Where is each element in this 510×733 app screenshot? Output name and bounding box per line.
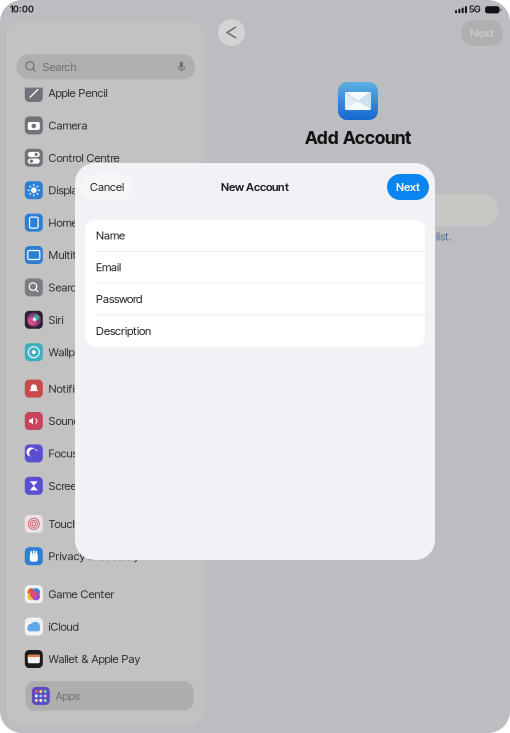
button[interactable]: Control Centre (18, 142, 200, 174)
staticText: Notifications (49, 382, 110, 395)
button[interactable]: Wallet & Apple Pay (18, 643, 200, 675)
button[interactable]: Cancel (80, 174, 134, 200)
staticText: Add Account (305, 127, 411, 148)
staticText: Apple Pencil (49, 86, 108, 100)
button[interactable]: Password (85, 283, 425, 315)
button[interactable]: Wallpaper (18, 336, 200, 368)
button[interactable]: Back (218, 19, 245, 46)
staticText: 10:00 (10, 4, 34, 15)
staticText: Game Center (49, 587, 115, 601)
button[interactable]: Next (387, 174, 429, 200)
staticText: Home Screen & App Library (49, 216, 184, 229)
staticText: Wallet & Apple Pay (49, 652, 141, 666)
staticText: Wallpaper (49, 345, 97, 359)
staticText: 5G (469, 4, 481, 15)
staticText: Multitasking & Gestures (49, 248, 164, 262)
button[interactable]: Apple Pencil (18, 77, 200, 109)
button[interactable]: Touch ID & Passcode (18, 508, 200, 540)
staticText: iCloud (49, 620, 79, 633)
staticText: Search (42, 60, 76, 74)
button[interactable]: Search (18, 271, 200, 304)
staticText: New Account (221, 180, 289, 194)
staticText: Email (96, 260, 121, 274)
staticText: Display & Brightness (49, 183, 148, 197)
button[interactable]: Focus (18, 437, 200, 470)
staticText: Apps (56, 689, 80, 703)
button[interactable]: Multitasking & Gestures (18, 239, 200, 271)
button[interactable]: Email (85, 252, 425, 283)
staticText: Name (96, 229, 125, 242)
staticText: Enter your email to add it to this list. (278, 229, 452, 243)
staticText: Touch ID & Passcode (49, 517, 152, 531)
button[interactable]: Description (85, 315, 425, 347)
staticText: Camera (49, 118, 88, 132)
button[interactable]: Screen Time (18, 470, 200, 502)
button[interactable]: Home Screen & App Library (18, 206, 200, 239)
staticText: Description (96, 324, 151, 338)
button[interactable]: Name (85, 220, 425, 252)
button[interactable]: Sounds & Haptics (18, 405, 200, 437)
button[interactable]: Camera (18, 109, 200, 142)
button[interactable]: Next (461, 20, 503, 46)
button[interactable]: iCloud (18, 610, 200, 643)
staticText: Search (49, 280, 83, 294)
button[interactable]: Siri (18, 304, 200, 336)
button[interactable]: Display & Brightness (18, 174, 200, 206)
staticText: Siri (49, 313, 64, 327)
staticText: Sounds & Haptics (49, 414, 135, 428)
button[interactable]: Notifications (18, 372, 200, 405)
staticText: Privacy & Security (49, 549, 140, 563)
staticText: Next (470, 26, 494, 40)
staticText: Control Centre (49, 151, 120, 165)
staticText: Next (396, 180, 420, 194)
button[interactable]: Game Center (18, 578, 200, 610)
button[interactable]: Privacy & Security (18, 540, 200, 572)
staticText: Password (96, 292, 142, 306)
button[interactable]: Apps (25, 681, 193, 711)
staticText: Focus (49, 446, 78, 460)
staticText: Screen Time (49, 479, 110, 493)
staticText: Cancel (90, 180, 124, 194)
button[interactable]: Search (16, 54, 195, 79)
